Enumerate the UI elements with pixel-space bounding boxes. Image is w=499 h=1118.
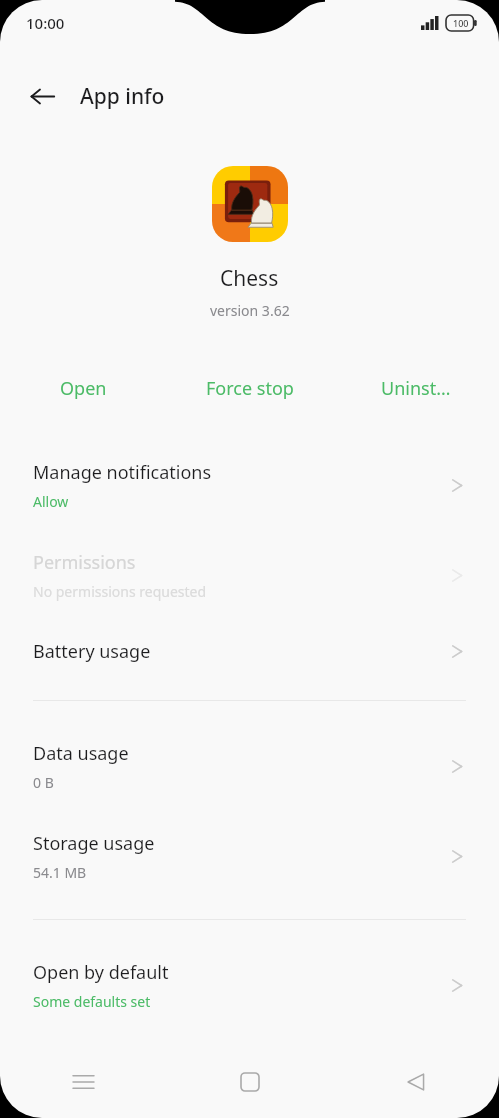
staticText: No permissions requested [33,582,207,601]
staticText: Force stop [206,376,294,401]
button[interactable]: Back [333,1046,499,1118]
button[interactable]: Home [167,1046,333,1118]
staticText: Uninst… [381,376,451,401]
button[interactable]: Force stop [167,366,333,410]
button[interactable]: Back [18,72,66,120]
staticText: Chess [220,264,279,293]
staticText: Permissions [33,550,136,575]
button[interactable]: Data usage [0,721,499,811]
staticText: version 3.62 [210,301,290,320]
staticText: 100 [453,17,469,29]
staticText: 10:00 [26,13,65,33]
staticText: Battery usage [33,639,151,664]
button[interactable]: Open [0,366,167,410]
button[interactable]: Permissions [0,530,499,620]
staticText: Data usage [33,741,129,766]
staticText: Open by default [33,960,169,985]
staticText: Open [60,376,107,401]
staticText: 0 B [33,773,54,792]
staticText: Allow [33,492,69,511]
staticText: Some defaults set [33,992,151,1011]
staticText: App info [80,82,165,111]
staticText: Manage notifications [33,460,212,485]
button[interactable]: Storage usage [0,811,499,901]
staticText: Storage usage [33,831,155,856]
button[interactable]: Open by default [0,940,499,1030]
button[interactable]: Recent apps [0,1046,167,1118]
button[interactable]: Uninst… [333,366,499,410]
button[interactable]: Manage notifications [0,440,499,530]
button[interactable]: Battery usage [0,620,499,682]
staticText: 54.1 MB [33,863,87,882]
